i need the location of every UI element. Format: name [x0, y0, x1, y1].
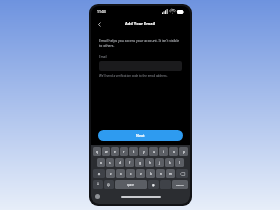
staticText: x	[120, 172, 122, 176]
staticText: 11:03	[97, 9, 106, 14]
button[interactable]: o	[169, 147, 178, 156]
staticText: space	[127, 183, 135, 187]
staticText: y	[143, 150, 145, 154]
staticText: We'll send a verification code to the em…	[99, 74, 168, 78]
staticText: d	[119, 161, 121, 165]
staticText: i	[163, 150, 164, 154]
button[interactable]: space	[115, 180, 147, 189]
staticText: s	[109, 161, 111, 165]
button[interactable]: n	[156, 169, 165, 178]
button[interactable]: a	[97, 158, 105, 167]
staticText: r	[123, 150, 125, 154]
staticText: k	[169, 161, 171, 165]
button[interactable]: r	[120, 147, 128, 156]
button[interactable]: Key	[148, 180, 159, 189]
staticText: Next	[136, 133, 145, 138]
button[interactable]: d	[115, 158, 124, 167]
button[interactable]: i	[159, 147, 168, 156]
staticText: Email	[99, 55, 107, 59]
staticText: e	[114, 150, 116, 154]
button[interactable]: z	[106, 169, 115, 178]
staticText: c	[130, 172, 132, 176]
button[interactable]: k	[165, 158, 174, 167]
staticText: Email helps you access your account. It …	[99, 38, 182, 48]
button[interactable]: v	[136, 169, 145, 178]
button[interactable]: Key	[93, 169, 105, 178]
button[interactable]: w	[102, 147, 110, 156]
button[interactable]: Back	[94, 19, 104, 29]
staticText: w	[105, 150, 108, 154]
button[interactable]: l	[175, 158, 184, 167]
button[interactable]: y	[139, 147, 148, 156]
staticText: search	[176, 183, 184, 186]
staticText: j	[159, 161, 160, 165]
button[interactable]: Next	[98, 130, 183, 141]
staticText: h	[149, 161, 151, 165]
staticText: o	[173, 150, 175, 154]
staticText: ☺	[107, 183, 111, 186]
button[interactable]: j	[155, 158, 164, 167]
button[interactable]: m	[166, 169, 175, 178]
button[interactable]: x	[116, 169, 125, 178]
button[interactable]: u	[149, 147, 158, 156]
button[interactable]: p	[179, 147, 188, 156]
staticText: b	[150, 172, 152, 176]
button[interactable]: search	[172, 180, 188, 189]
staticText: a	[100, 161, 102, 165]
staticText: g	[139, 161, 141, 165]
staticText: u	[153, 150, 155, 154]
button[interactable]: b	[146, 169, 155, 178]
staticText: z	[110, 172, 112, 176]
staticText: p	[183, 150, 185, 154]
button[interactable]: g	[135, 158, 144, 167]
button[interactable]: t	[129, 147, 138, 156]
staticText: q	[96, 150, 98, 154]
button[interactable]: s	[106, 158, 114, 167]
button[interactable]: q	[93, 147, 101, 156]
staticText: n	[160, 172, 162, 176]
button[interactable]: Key	[104, 180, 114, 189]
button[interactable]: h	[145, 158, 154, 167]
staticText: f	[129, 161, 131, 165]
button[interactable]: Key	[176, 169, 188, 178]
button[interactable]: e	[111, 147, 119, 156]
staticText: m	[169, 172, 172, 176]
button[interactable]: f	[125, 158, 134, 167]
staticText: t	[133, 150, 135, 154]
button[interactable]: c	[126, 169, 135, 178]
button[interactable]: Key	[93, 180, 103, 189]
button[interactable]: Assistant	[95, 194, 100, 199]
staticText: ⌸	[97, 183, 99, 186]
staticText: l	[179, 161, 180, 165]
staticText: ●	[152, 183, 155, 186]
staticText: v	[140, 172, 142, 176]
staticText: Add Your Email	[125, 21, 156, 26]
